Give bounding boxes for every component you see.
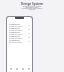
button[interactable]: Components [7,35,32,39]
staticText: Components [9,31,20,33]
staticText: Buttons and cards [9,33,22,35]
staticText: 12 [28,36,30,38]
staticText: Components [9,27,20,29]
button[interactable]: Navigate [8,66,13,71]
staticText: Design System [21,2,43,6]
button[interactable]: Navigate [14,66,19,71]
button[interactable]: Components [7,23,32,27]
staticText: Buttons and cards [9,29,22,31]
staticText: Buttons and cards [9,41,22,43]
button[interactable]: Navigate [26,66,31,71]
button[interactable]: Navigate [20,66,25,71]
button[interactable]: Components [7,39,32,43]
button[interactable]: Components [7,31,32,35]
staticText: Components [9,35,20,37]
staticText: 12 [28,32,30,34]
staticText: Components [9,39,20,41]
button[interactable]: Components [7,27,32,31]
staticText: 12 [28,40,30,42]
staticText: 12 [28,24,30,26]
staticText: 12 [28,28,30,30]
staticText: Buttons and cards [9,37,22,39]
staticText: Build beautiful mobile apps with clean c… [21,5,43,11]
staticText: Components [9,23,20,25]
staticText: Buttons and cards [9,25,22,27]
